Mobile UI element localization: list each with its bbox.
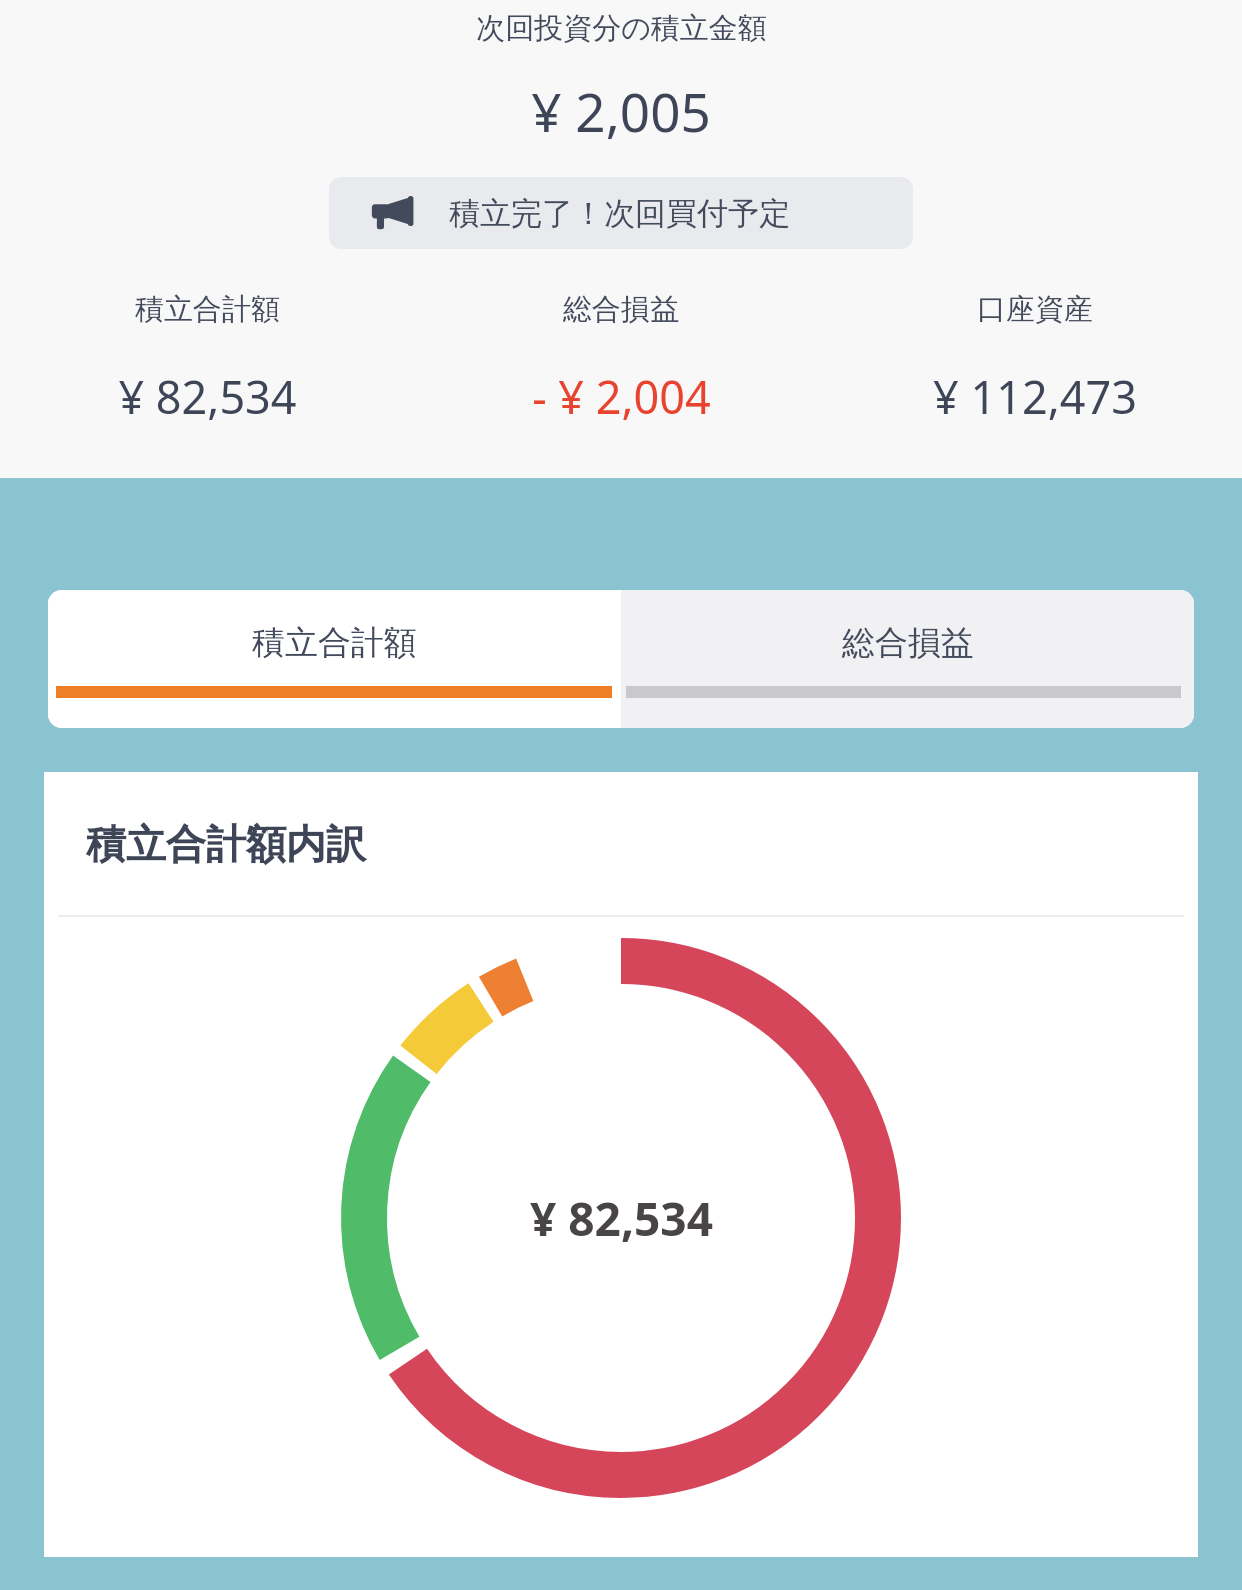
staticText: ¥ 82,534	[530, 1187, 713, 1250]
staticText: 総合損益	[842, 622, 974, 664]
button[interactable]: 総合損益	[621, 590, 1194, 728]
button[interactable]: 総合損益	[414, 291, 828, 427]
staticText: 総合損益	[563, 291, 679, 328]
staticText: 積立合計額	[252, 622, 417, 664]
button[interactable]: 積立合計額	[0, 291, 414, 427]
button[interactable]: 積立合計額	[48, 590, 621, 728]
other: お知らせ	[371, 196, 413, 230]
staticText: ¥ 2,005	[531, 75, 711, 147]
staticText: - ¥ 2,004	[532, 366, 711, 427]
staticText: 次回投資分の積立金額	[476, 10, 767, 47]
staticText: 積立合計額	[135, 291, 280, 328]
button[interactable]: お知らせ	[329, 177, 913, 249]
staticText: ¥ 112,473	[933, 366, 1137, 427]
staticText: ¥ 82,534	[118, 366, 297, 427]
staticText: 積立合計額内訳	[86, 819, 366, 869]
staticText: 積立完了！次回買付予定	[449, 194, 790, 233]
staticText: 口座資産	[977, 291, 1093, 328]
button[interactable]: 口座資産	[828, 291, 1242, 427]
